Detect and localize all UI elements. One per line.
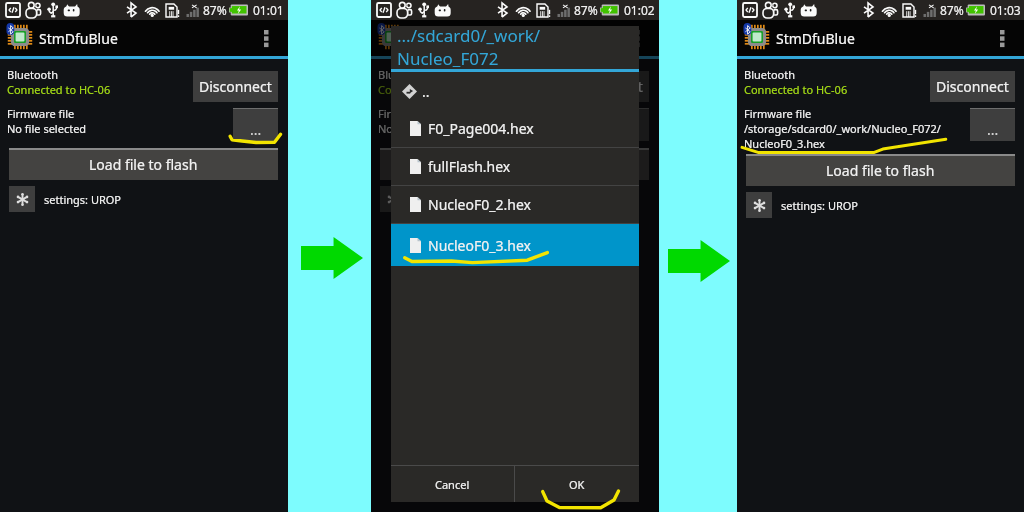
button[interactable]: Settings [9,186,35,212]
staticText: F0_Page004.hex [428,119,534,138]
button[interactable]: fullFlash.hex [391,148,639,185]
staticText: 01:03 [990,2,1021,18]
staticText: settings: UROP [781,198,859,213]
staticText: /storage/sdcard0/_work/Nucleo_F072/ [744,121,941,136]
staticText: Connected to HC-06 [7,82,111,97]
staticText: Bluetooth [744,67,796,82]
staticText: Bluetooth [378,67,430,82]
staticText: Firmware file [744,106,812,121]
staticText: NucleoF0_3.hex [428,236,531,255]
staticText: Connected to HC-06 [378,82,482,97]
button[interactable]: .. [391,72,639,110]
staticText: settings: UROP [415,192,493,207]
staticText: .. [422,82,430,101]
button[interactable]: Cancel [391,466,514,502]
staticText: Cancel [435,477,470,492]
button[interactable]: Load file to flash [746,154,1015,186]
button[interactable]: OK [515,466,639,502]
staticText: StmDfuBlue [39,29,118,48]
button[interactable]: More options [627,20,659,56]
staticText: Disconnect [199,77,272,96]
staticText: Bluetooth [7,67,59,82]
staticText: settings: UROP [44,192,122,207]
staticText: fullFlash.hex [428,157,511,176]
staticText: 87% [940,2,964,18]
staticText: Disconnect [570,77,643,96]
staticText: No file selected [378,121,458,136]
button[interactable]: F0_Page004.hex [391,110,639,147]
staticText: ... [987,120,999,139]
staticText: StmDfuBlue [776,29,855,48]
button[interactable]: Disconnect [193,71,278,102]
button[interactable]: ... [970,108,1015,141]
staticText: NucleoF0_2.hex [428,195,531,214]
staticText: Load file to flash [826,161,935,180]
staticText: Load file to flash [89,155,198,174]
button[interactable]: NucleoF0_3.hex [391,224,639,266]
staticText: StmDfuBlue [410,29,489,48]
button[interactable]: NucleoF0_2.hex [391,186,639,223]
button[interactable]: ... [233,108,278,141]
button[interactable]: Load file to flash [9,148,278,180]
staticText: Firmware file [378,106,446,121]
staticText: ... [250,120,262,139]
staticText: .../sdcard0/_work/ [397,24,541,47]
button[interactable]: Disconnect [930,71,1015,102]
staticText: 87% [203,2,227,18]
staticText: Load file to flash [460,155,569,174]
staticText: Nucleo_F072 [397,47,499,67]
button[interactable]: Settings [380,186,406,212]
staticText: OK [569,477,585,492]
button[interactable]: More options [256,20,288,56]
staticText: 01:01 [253,2,284,18]
staticText: Firmware file [7,106,75,121]
button[interactable]: More options [992,20,1024,56]
button[interactable]: Settings [746,192,772,218]
staticText: Connected to HC-06 [744,82,848,97]
staticText: Disconnect [936,77,1009,96]
staticText: 87% [574,2,598,18]
staticText: 01:02 [624,2,655,18]
staticText: NucleoF0_3.hex [744,136,825,151]
staticText: No file selected [7,121,87,136]
